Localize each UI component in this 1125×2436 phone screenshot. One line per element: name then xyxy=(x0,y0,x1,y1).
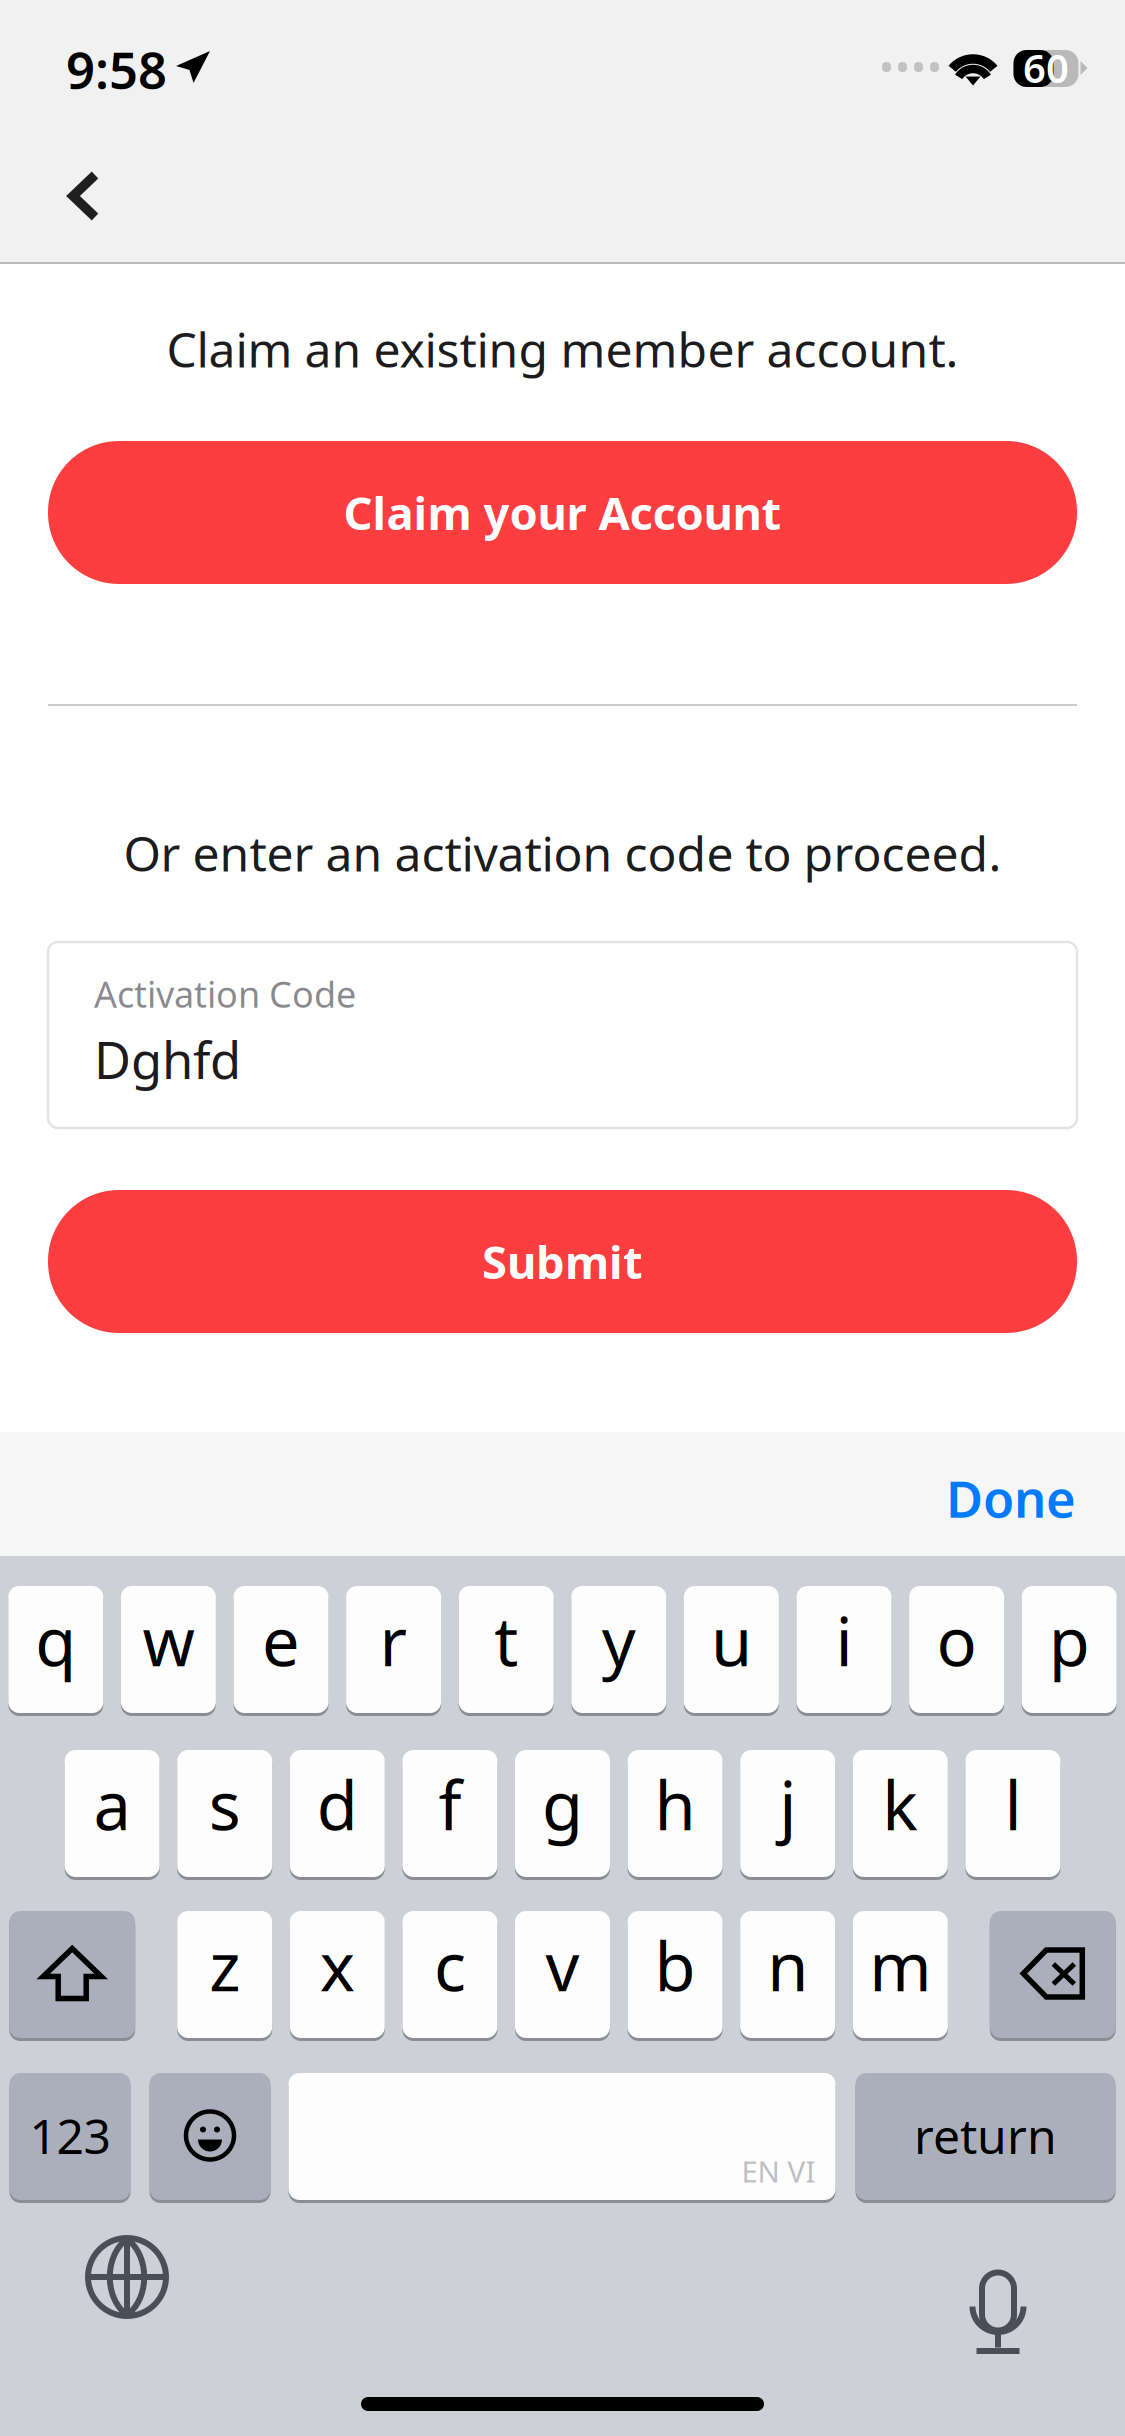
button[interactable]: j xyxy=(740,1750,835,1880)
button[interactable]: w xyxy=(121,1586,216,1716)
button[interactable]: 123 xyxy=(9,2073,130,2203)
button[interactable]: r xyxy=(346,1586,441,1716)
staticText: n xyxy=(767,1921,808,2010)
staticText: f xyxy=(438,1760,461,1849)
button[interactable]: Claim your Account xyxy=(48,441,1077,584)
button[interactable]: o xyxy=(909,1586,1004,1716)
staticText: m xyxy=(869,1921,931,2010)
button[interactable]: s xyxy=(177,1750,272,1880)
staticText: b xyxy=(655,1921,696,2010)
button[interactable]: y xyxy=(571,1586,666,1716)
button[interactable]: q xyxy=(8,1586,103,1716)
staticText: w xyxy=(142,1596,194,1685)
button[interactable]: b xyxy=(628,1911,723,2041)
button[interactable]: a xyxy=(65,1750,160,1880)
staticText: l xyxy=(1004,1760,1021,1849)
staticText: k xyxy=(882,1760,918,1849)
button[interactable]: return xyxy=(855,2073,1115,2203)
staticText: r xyxy=(380,1596,408,1685)
button[interactable]: h xyxy=(628,1750,723,1880)
button[interactable]: space xyxy=(288,2073,835,2203)
button[interactable]: v xyxy=(515,1911,610,2041)
button[interactable]: l xyxy=(965,1750,1060,1880)
staticText: 60 xyxy=(1023,41,1069,94)
staticText: EN VI xyxy=(741,2151,815,2190)
staticText: 123 xyxy=(29,2104,110,2167)
button[interactable]: Emoji xyxy=(149,2073,270,2203)
staticText: Done xyxy=(946,1464,1076,1532)
staticText: a xyxy=(94,1760,131,1849)
staticText: g xyxy=(542,1760,583,1849)
staticText: return xyxy=(914,2104,1057,2167)
staticText: u xyxy=(711,1596,752,1685)
button[interactable]: Delete xyxy=(990,1911,1116,2041)
staticText: i xyxy=(835,1596,852,1685)
button[interactable]: p xyxy=(1022,1586,1117,1716)
button[interactable]: g xyxy=(515,1750,610,1880)
button[interactable]: k xyxy=(853,1750,948,1880)
staticText: x xyxy=(320,1921,355,2010)
staticText: Dghfd xyxy=(94,1026,241,1093)
button[interactable]: x xyxy=(290,1911,385,2041)
button[interactable]: Back xyxy=(36,148,132,244)
button[interactable]: d xyxy=(290,1750,385,1880)
button[interactable]: Dictation xyxy=(943,2257,1053,2367)
staticText: Activation Code xyxy=(94,970,356,1018)
button[interactable]: Done xyxy=(906,1456,1076,1540)
button[interactable]: Submit xyxy=(48,1190,1077,1333)
button[interactable]: c xyxy=(402,1911,497,2041)
staticText: Claim an existing member account. xyxy=(166,317,958,381)
staticText: v xyxy=(545,1921,579,2010)
staticText: z xyxy=(209,1921,240,2010)
button[interactable]: f xyxy=(402,1750,497,1880)
staticText: j xyxy=(779,1760,796,1849)
staticText: q xyxy=(35,1596,76,1685)
button[interactable]: e xyxy=(233,1586,328,1716)
staticText: e xyxy=(262,1596,300,1685)
button[interactable]: Shift xyxy=(9,1911,135,2041)
staticText: t xyxy=(494,1596,518,1685)
button[interactable]: t xyxy=(459,1586,554,1716)
staticText: o xyxy=(937,1596,977,1685)
staticText: p xyxy=(1049,1596,1090,1685)
staticText: Submit xyxy=(482,1231,643,1292)
button[interactable]: m xyxy=(853,1911,948,2041)
staticText: h xyxy=(655,1760,696,1849)
button[interactable]: i xyxy=(796,1586,891,1716)
button[interactable]: u xyxy=(684,1586,779,1716)
staticText: Or enter an activation code to proceed. xyxy=(123,821,1001,885)
button[interactable]: n xyxy=(740,1911,835,2041)
staticText: y xyxy=(602,1596,636,1685)
staticText: Claim your Account xyxy=(343,482,781,543)
staticText: c xyxy=(434,1921,466,2010)
staticText: d xyxy=(317,1760,358,1849)
button[interactable]: Next keyboard xyxy=(72,2222,182,2332)
staticText: 9:58 xyxy=(66,35,167,103)
button[interactable]: z xyxy=(177,1911,272,2041)
staticText: s xyxy=(209,1760,241,1849)
